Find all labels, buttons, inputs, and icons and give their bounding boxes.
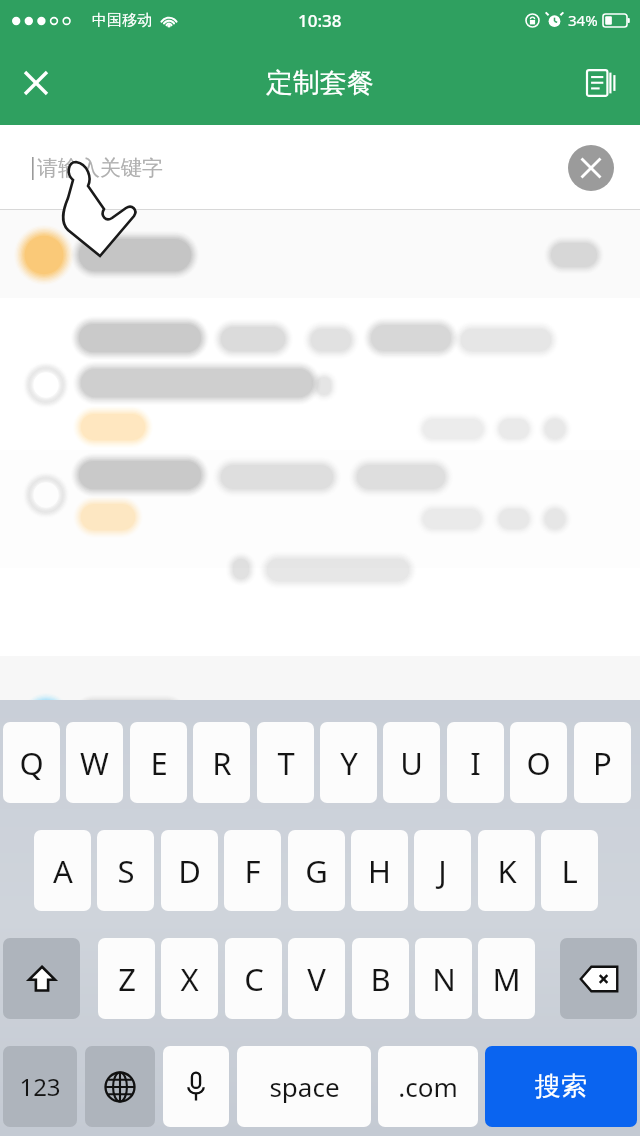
staticText: N bbox=[432, 958, 456, 1000]
staticText: A bbox=[53, 850, 73, 892]
button[interactable]: Y bbox=[320, 722, 377, 803]
staticText: 请输入关键字 bbox=[37, 155, 163, 181]
button[interactable]: I bbox=[447, 722, 504, 803]
staticText: F bbox=[244, 850, 261, 892]
button[interactable]: Orders bbox=[574, 55, 630, 111]
staticText: M bbox=[492, 958, 521, 1000]
button[interactable]: space bbox=[237, 1046, 371, 1127]
staticText: T bbox=[277, 742, 295, 784]
button[interactable]: A bbox=[34, 830, 91, 911]
staticText: Z bbox=[118, 958, 136, 1000]
staticText: 定制套餐 bbox=[266, 66, 374, 100]
staticText: D bbox=[178, 850, 201, 892]
button[interactable]: B bbox=[352, 938, 409, 1019]
staticText: J bbox=[438, 850, 447, 892]
button[interactable]: Close bbox=[8, 55, 64, 111]
button[interactable]: 123 bbox=[3, 1046, 77, 1127]
button[interactable]: Shift bbox=[3, 938, 80, 1019]
staticText: Q bbox=[19, 742, 44, 784]
button[interactable]: W bbox=[66, 722, 123, 803]
staticText: 搜索 bbox=[535, 1070, 587, 1103]
staticText: I bbox=[470, 742, 481, 784]
button[interactable]: M bbox=[478, 938, 535, 1019]
button[interactable]: C bbox=[225, 938, 282, 1019]
staticText: 10:38 bbox=[298, 9, 342, 32]
staticText: O bbox=[526, 742, 551, 784]
staticText: .com bbox=[398, 1069, 458, 1104]
staticText: C bbox=[244, 958, 264, 1000]
staticText: 123 bbox=[19, 1070, 61, 1103]
staticText: space bbox=[269, 1069, 340, 1104]
button[interactable]: V bbox=[288, 938, 345, 1019]
staticText: B bbox=[370, 958, 391, 1000]
staticText: H bbox=[368, 850, 391, 892]
button[interactable]: 搜索 bbox=[485, 1046, 637, 1127]
button[interactable]: Voice input bbox=[163, 1046, 229, 1127]
button[interactable]: L bbox=[541, 830, 598, 911]
staticText: K bbox=[497, 850, 517, 892]
staticText: L bbox=[561, 850, 578, 892]
button[interactable]: G bbox=[288, 830, 345, 911]
staticText: 中国移动 bbox=[92, 11, 152, 30]
staticText: V bbox=[307, 958, 326, 1000]
button[interactable]: E bbox=[130, 722, 187, 803]
staticText: E bbox=[150, 742, 168, 784]
button[interactable]: H bbox=[351, 830, 408, 911]
staticText: S bbox=[117, 850, 135, 892]
button[interactable]: X bbox=[161, 938, 218, 1019]
button[interactable]: D bbox=[161, 830, 218, 911]
button[interactable]: P bbox=[574, 722, 631, 803]
button[interactable]: .com bbox=[378, 1046, 478, 1127]
button[interactable]: Z bbox=[98, 938, 155, 1019]
button[interactable]: R bbox=[193, 722, 250, 803]
staticText: W bbox=[80, 742, 109, 784]
button[interactable]: Q bbox=[3, 722, 60, 803]
button[interactable]: K bbox=[478, 830, 535, 911]
button[interactable]: Change keyboard bbox=[85, 1046, 155, 1127]
button[interactable]: F bbox=[224, 830, 281, 911]
staticText: 34% bbox=[568, 10, 598, 30]
staticText: R bbox=[212, 742, 232, 784]
staticText: X bbox=[180, 958, 199, 1000]
button[interactable]: Clear bbox=[567, 144, 615, 192]
button[interactable]: N bbox=[415, 938, 472, 1019]
staticText: U bbox=[400, 742, 423, 784]
button[interactable]: T bbox=[257, 722, 314, 803]
staticText: Y bbox=[340, 742, 358, 784]
button[interactable]: Backspace bbox=[560, 938, 637, 1019]
button[interactable]: S bbox=[97, 830, 154, 911]
staticText: G bbox=[305, 850, 328, 892]
button[interactable]: O bbox=[510, 722, 567, 803]
staticText: P bbox=[593, 742, 612, 784]
button[interactable]: U bbox=[383, 722, 440, 803]
button[interactable]: J bbox=[414, 830, 471, 911]
